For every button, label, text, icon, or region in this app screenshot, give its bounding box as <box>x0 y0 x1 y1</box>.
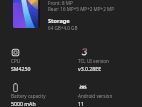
staticText: Front: 8 MP <box>48 0 73 6</box>
button[interactable]: CPU <box>10 47 20 57</box>
staticText: SM4250 <box>11 65 31 72</box>
staticText: 11 <box>78 100 84 107</box>
button[interactable]: TCL UI version <box>79 46 89 56</box>
staticText: 64 GB+4.0 GB <box>48 25 78 31</box>
staticText: CPU <box>11 58 21 64</box>
staticText: v3.0.28EE <box>78 65 102 72</box>
button[interactable]: Battery capacity <box>10 82 20 92</box>
staticText: Storage <box>48 17 70 25</box>
staticText: Rear: 16 MP+5 MP+2 MP+2 MP <box>48 6 114 12</box>
staticText: TCL UI version <box>78 58 109 64</box>
staticText: Battery capacity <box>11 93 46 99</box>
staticText: 5000 mAh <box>11 100 36 107</box>
button[interactable]: Android version <box>78 82 88 92</box>
staticText: Android version <box>78 93 113 99</box>
